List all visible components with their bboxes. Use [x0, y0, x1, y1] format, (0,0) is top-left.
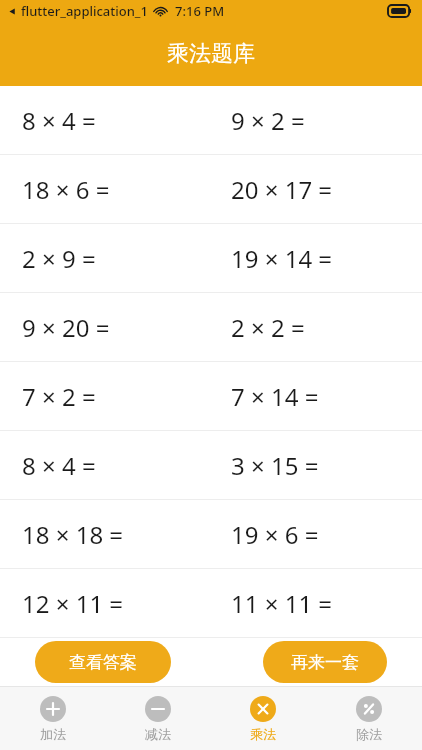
staticText: 3 × 15 = — [231, 449, 319, 482]
staticText: 12 × 11 = — [22, 587, 124, 620]
button[interactable]: 9 × 20 = — [0, 293, 422, 361]
button[interactable]: 乘法 — [210, 687, 316, 750]
staticText: 7:16 PM — [175, 2, 225, 20]
staticText: 查看答案 — [69, 652, 137, 673]
staticText: 8 × 4 = — [22, 449, 96, 482]
staticText: 乘法题库 — [167, 40, 255, 68]
staticText: 9 × 2 = — [231, 104, 305, 137]
button[interactable]: 2 × 9 = — [0, 224, 422, 292]
staticText: 除法 — [356, 726, 382, 742]
button[interactable]: 18 × 18 = — [0, 500, 422, 568]
staticText: 7 × 2 = — [22, 380, 96, 413]
staticText: 再来一套 — [291, 652, 359, 673]
staticText: 18 × 6 = — [22, 173, 110, 206]
staticText: 乘法 — [250, 726, 276, 742]
staticText: 2 × 2 = — [231, 311, 305, 344]
staticText: 7 × 14 = — [231, 380, 319, 413]
staticText: 18 × 18 = — [22, 518, 124, 551]
button[interactable]: 8 × 4 = — [0, 86, 422, 154]
button[interactable]: 加法 — [0, 687, 105, 750]
button[interactable]: 18 × 6 = — [0, 155, 422, 223]
staticText: 9 × 20 = — [22, 311, 110, 344]
button[interactable]: 12 × 11 = — [0, 569, 422, 637]
staticText: 11 × 11 = — [231, 587, 333, 620]
staticText: 加法 — [40, 726, 66, 742]
staticText: 2 × 9 = — [22, 242, 96, 275]
staticText: 19 × 6 = — [231, 518, 319, 551]
button[interactable]: 除法 — [316, 687, 422, 750]
staticText: 8 × 4 = — [22, 104, 96, 137]
button[interactable]: 查看答案 — [35, 641, 171, 683]
staticText: 20 × 17 = — [231, 173, 333, 206]
button[interactable]: 8 × 4 = — [0, 431, 422, 499]
button[interactable]: 7 × 2 = — [0, 362, 422, 430]
staticText: flutter_application_1 — [21, 2, 148, 20]
staticText: 19 × 14 = — [231, 242, 333, 275]
staticText: 减法 — [145, 726, 171, 742]
button[interactable]: 再来一套 — [263, 641, 387, 683]
button[interactable]: 减法 — [105, 687, 210, 750]
